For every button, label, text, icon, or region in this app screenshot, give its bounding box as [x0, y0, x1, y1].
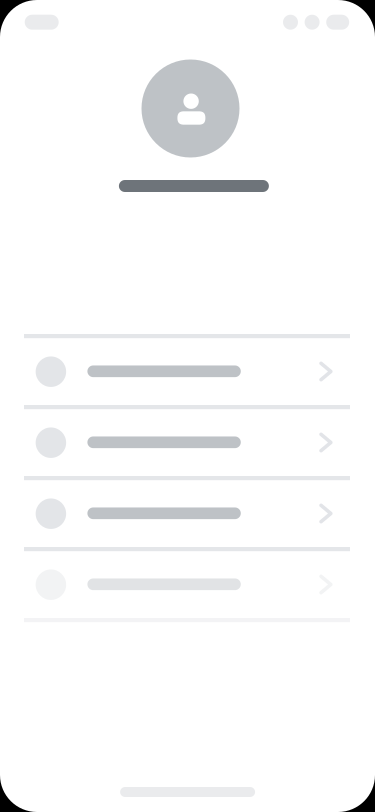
button[interactable]: Loading item 1: [0, 336, 375, 407]
button[interactable]: Loading item 3: [0, 478, 375, 549]
button[interactable]: Profile photo: [141, 59, 239, 157]
button[interactable]: Loading item 2: [0, 407, 375, 478]
button[interactable]: Loading item 4: [0, 549, 375, 620]
